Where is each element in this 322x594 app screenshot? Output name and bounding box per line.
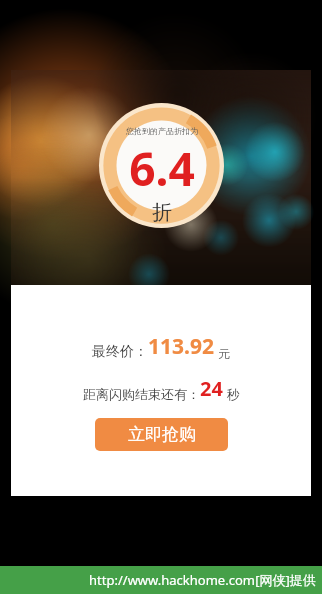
staticText: [网侠]提供	[255, 571, 316, 589]
staticText: 折	[152, 200, 172, 225]
staticText: 最终价：	[92, 343, 148, 361]
staticText: 113.92	[148, 332, 214, 361]
button[interactable]: 立即抢购	[95, 418, 228, 451]
staticText: 您抢到的产品折扣为	[126, 126, 198, 136]
staticText: 24	[200, 375, 223, 402]
staticText: http://www.hackhome.com	[89, 571, 255, 589]
staticText: 元	[218, 346, 230, 361]
staticText: 6.4	[129, 137, 195, 200]
staticText: 秒	[227, 386, 240, 402]
staticText: 距离闪购结束还有：	[83, 386, 200, 402]
staticText: 立即抢购	[128, 424, 196, 445]
